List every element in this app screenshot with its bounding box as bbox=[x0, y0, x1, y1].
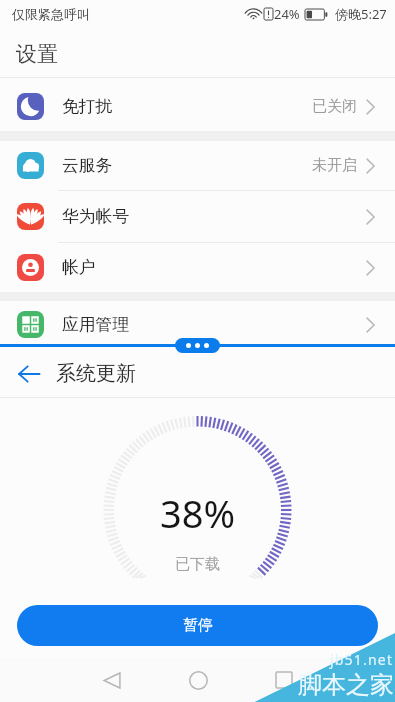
staticText: 应用管理 bbox=[62, 314, 130, 335]
staticText: 云服务 bbox=[62, 155, 113, 176]
button[interactable]: 华为帐号 bbox=[0, 191, 395, 242]
staticText: 24% bbox=[274, 5, 300, 23]
button[interactable]: 暂停 bbox=[17, 605, 378, 646]
staticText: 已关闭 bbox=[312, 97, 357, 116]
staticText: 仅限紧急呼叫 bbox=[12, 6, 90, 22]
button[interactable]: Home bbox=[155, 658, 241, 702]
staticText: 系统更新 bbox=[56, 361, 136, 386]
staticText: 帐户 bbox=[62, 257, 96, 278]
button[interactable]: Split screen handle bbox=[175, 338, 220, 353]
staticText: jb51.net bbox=[330, 650, 394, 669]
staticText: 脚本之家 bbox=[298, 670, 394, 700]
staticText: 暂停 bbox=[183, 616, 213, 635]
button[interactable]: 云服务 bbox=[0, 141, 395, 190]
button[interactable]: Recent apps bbox=[241, 658, 327, 702]
staticText: 未开启 bbox=[312, 156, 357, 175]
button[interactable]: 应用管理 bbox=[0, 301, 395, 344]
staticText: 38% bbox=[160, 487, 236, 539]
staticText: 华为帐号 bbox=[62, 206, 130, 227]
button[interactable]: 帐户 bbox=[0, 243, 395, 292]
button[interactable]: Back bbox=[68, 658, 155, 702]
staticText: 免打扰 bbox=[62, 96, 113, 117]
button[interactable]: 免打扰 bbox=[0, 78, 395, 131]
staticText: 已下载 bbox=[175, 555, 220, 574]
staticText: 傍晚5:27 bbox=[335, 5, 387, 23]
button[interactable]: Back bbox=[15, 360, 43, 388]
staticText: 设置 bbox=[16, 41, 58, 67]
